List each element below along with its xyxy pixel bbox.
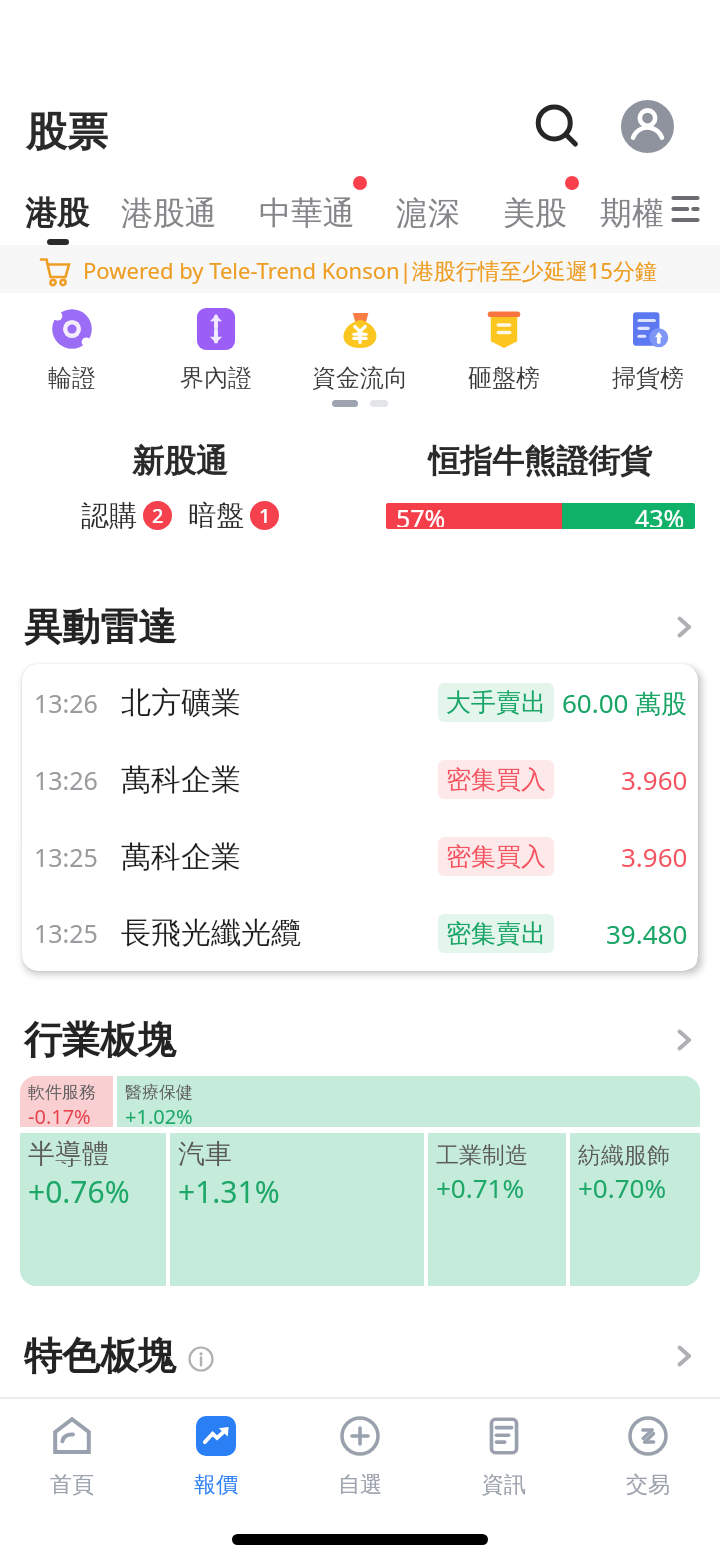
staticText: 1 — [259, 502, 271, 529]
staticText: 資訊 — [482, 1471, 526, 1499]
staticText: 行業板塊 — [24, 1016, 176, 1064]
staticText: 首頁 — [50, 1471, 94, 1499]
staticText: 醫療保健 — [125, 1082, 193, 1103]
staticText: 密集買入 — [446, 764, 546, 795]
staticText: 港股通 — [121, 193, 217, 233]
button[interactable]: 港股通 — [121, 193, 217, 233]
staticText: 汽車 — [178, 1137, 232, 1171]
button[interactable]: 港股 — [25, 193, 89, 233]
button[interactable]: 軟件服務 — [20, 1076, 113, 1127]
staticText: 砸盤榜 — [468, 363, 540, 393]
button[interactable]: 13:26 — [22, 664, 698, 741]
button[interactable]: 13:25 — [22, 818, 698, 895]
staticText: 新股通 — [132, 441, 228, 481]
button[interactable]: 砸盤榜 — [444, 306, 564, 393]
staticText: 界內證 — [180, 363, 252, 393]
staticText: 密集賣出 — [446, 918, 546, 949]
staticText: 2 — [152, 502, 164, 529]
button[interactable]: 特色板塊 — [0, 1330, 720, 1382]
staticText: 紡織服飾 — [578, 1141, 670, 1170]
staticText: +1.02% — [125, 1103, 193, 1130]
staticText: 資金流向 — [312, 363, 408, 393]
button[interactable]: 恒指牛熊證街貨 — [360, 441, 720, 529]
staticText: 13:25 — [34, 916, 98, 950]
staticText: 滬深 — [396, 193, 460, 233]
button[interactable]: 異動雷達 — [0, 599, 720, 655]
button[interactable]: 資金流向 — [300, 306, 420, 393]
button[interactable]: Powered by Tele-Trend Konson|港股行情至少延遲15分… — [0, 245, 720, 293]
button[interactable]: Search — [526, 96, 586, 156]
staticText: 港股 — [25, 193, 89, 233]
staticText: 自選 — [338, 1471, 382, 1499]
staticText: 萬科企業 — [121, 761, 241, 799]
button[interactable]: 輪證 — [12, 306, 132, 393]
staticText: 3.960 — [621, 762, 688, 797]
staticText: 北方礦業 — [121, 684, 241, 722]
button[interactable]: 13:26 — [22, 741, 698, 818]
staticText: Powered by Tele-Trend Konson|港股行情至少延遲15分… — [83, 255, 657, 285]
button[interactable]: 中華通 — [259, 193, 355, 233]
button[interactable]: 新股通 — [0, 441, 360, 533]
staticText: 中華通 — [259, 193, 355, 233]
staticText: +1.31% — [178, 1171, 280, 1212]
staticText: 長飛光纖光纜 — [121, 914, 301, 952]
staticText: 掃貨榜 — [612, 363, 684, 393]
button[interactable]: 13:25 — [22, 895, 698, 971]
staticText: -0.17% — [28, 1103, 91, 1130]
staticText: 密集買入 — [446, 841, 546, 872]
staticText: 43% — [635, 503, 685, 527]
button[interactable]: 自選 — [300, 1414, 420, 1514]
staticText: 特色板塊 — [24, 1332, 176, 1380]
staticText: 半導體 — [28, 1137, 109, 1171]
staticText: 13:25 — [34, 840, 98, 874]
button[interactable]: 美股 — [503, 193, 567, 233]
staticText: 13:26 — [34, 686, 98, 720]
staticText: 13:26 — [34, 763, 98, 797]
staticText: 股票 — [26, 107, 108, 159]
staticText: 交易 — [626, 1471, 670, 1499]
staticText: 大手賣出 — [446, 687, 546, 718]
staticText: 39.480 — [606, 916, 688, 951]
staticText: 萬科企業 — [121, 838, 241, 876]
button[interactable]: 工業制造 — [428, 1133, 566, 1286]
button[interactable]: 首頁 — [12, 1414, 132, 1514]
staticText: 報價 — [194, 1471, 238, 1499]
staticText: 工業制造 — [436, 1141, 528, 1170]
staticText: 美股 — [503, 193, 567, 233]
staticText: +0.76% — [28, 1171, 130, 1212]
button[interactable]: 資訊 — [444, 1414, 564, 1514]
staticText: 期權 — [600, 193, 664, 233]
staticText: 軟件服務 — [28, 1082, 96, 1103]
button[interactable]: 行業板塊 — [0, 1012, 720, 1068]
staticText: 暗盤 — [188, 498, 244, 533]
staticText: 輪證 — [48, 363, 96, 393]
button[interactable]: 報價 — [156, 1414, 276, 1514]
button[interactable]: 醫療保健 — [117, 1076, 700, 1127]
button[interactable]: Profile — [621, 100, 674, 153]
button[interactable]: 期權 — [600, 193, 664, 233]
staticText: +0.70% — [578, 1170, 667, 1205]
staticText: 57% — [396, 503, 446, 527]
button[interactable]: 半導體 — [20, 1133, 166, 1286]
button[interactable]: 紡織服飾 — [570, 1133, 700, 1286]
button[interactable]: 交易 — [588, 1414, 708, 1514]
button[interactable]: 汽車 — [170, 1133, 424, 1286]
staticText: 恒指牛熊證街貨 — [428, 441, 652, 481]
button[interactable]: 掃貨榜 — [588, 306, 708, 393]
staticText: 60.00 萬股 — [562, 685, 688, 721]
button[interactable]: 界內證 — [156, 306, 276, 393]
button[interactable]: 滬深 — [396, 193, 460, 233]
staticText: 認購 — [81, 498, 137, 533]
button[interactable]: More tabs — [658, 182, 712, 236]
staticText: +0.71% — [436, 1170, 525, 1205]
staticText: 3.960 — [621, 839, 688, 874]
staticText: 異動雷達 — [24, 603, 176, 651]
